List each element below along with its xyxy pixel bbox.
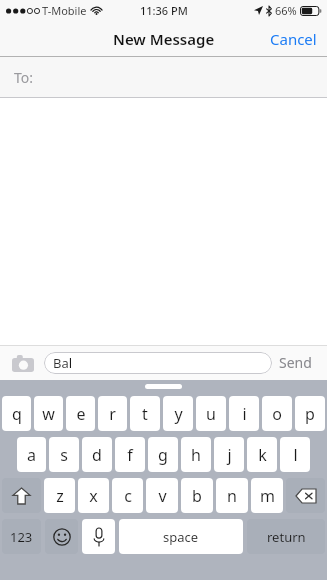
staticText: Send bbox=[279, 353, 312, 372]
button[interactable]: t bbox=[130, 396, 160, 431]
button[interactable]: i bbox=[229, 396, 259, 431]
button[interactable]: Cancel bbox=[260, 21, 327, 57]
staticText: z bbox=[56, 485, 64, 507]
button[interactable]: n bbox=[216, 478, 248, 513]
staticText: t bbox=[142, 403, 148, 425]
staticText: g bbox=[158, 444, 168, 466]
button[interactable]: Shift bbox=[2, 478, 41, 513]
staticText: w bbox=[42, 403, 55, 425]
button[interactable]: Dictation bbox=[82, 519, 115, 554]
staticText: y bbox=[174, 403, 183, 425]
button[interactable]: o bbox=[262, 396, 292, 431]
staticText: b bbox=[192, 485, 202, 507]
button[interactable]: x bbox=[78, 478, 109, 513]
staticText: Bal bbox=[53, 354, 73, 372]
button[interactable]: Camera bbox=[8, 348, 38, 378]
button[interactable]: j bbox=[214, 437, 244, 472]
staticText: l bbox=[293, 444, 298, 466]
button[interactable]: 123 bbox=[2, 519, 41, 554]
button[interactable]: u bbox=[196, 396, 226, 431]
button[interactable]: v bbox=[146, 478, 178, 513]
button[interactable]: r bbox=[98, 396, 127, 431]
staticText: 66% bbox=[275, 3, 297, 18]
staticText: p bbox=[305, 403, 315, 425]
button[interactable]: w bbox=[34, 396, 63, 431]
staticText: Cancel bbox=[270, 29, 317, 49]
staticText: n bbox=[227, 485, 237, 507]
button[interactable]: Send bbox=[272, 347, 319, 378]
staticText: o bbox=[272, 403, 282, 425]
staticText: s bbox=[60, 444, 68, 466]
button[interactable]: h bbox=[181, 437, 211, 472]
staticText: To: bbox=[14, 68, 34, 87]
button[interactable]: c bbox=[112, 478, 143, 513]
staticText: m bbox=[260, 485, 275, 507]
button[interactable]: k bbox=[247, 437, 277, 472]
button[interactable]: s bbox=[49, 437, 79, 472]
button[interactable]: z bbox=[44, 478, 75, 513]
button[interactable]: b bbox=[181, 478, 213, 513]
button[interactable]: Bal bbox=[44, 352, 272, 374]
staticText: return bbox=[267, 528, 306, 546]
staticText: 11:36 PM bbox=[140, 3, 188, 18]
button[interactable]: l bbox=[280, 437, 310, 472]
staticText: k bbox=[258, 444, 267, 466]
staticText: c bbox=[124, 485, 132, 507]
staticText: New Message bbox=[113, 29, 215, 49]
staticText: h bbox=[191, 444, 201, 466]
staticText: f bbox=[127, 444, 133, 466]
button[interactable]: q bbox=[2, 396, 31, 431]
button[interactable]: d bbox=[82, 437, 112, 472]
staticText: T-Mobile bbox=[42, 3, 87, 18]
button[interactable]: y bbox=[163, 396, 193, 431]
staticText: q bbox=[12, 403, 22, 425]
button[interactable]: p bbox=[295, 396, 325, 431]
staticText: 123 bbox=[10, 528, 33, 546]
button[interactable]: f bbox=[115, 437, 145, 472]
staticText: space bbox=[163, 528, 199, 546]
staticText: v bbox=[158, 485, 167, 507]
staticText: u bbox=[206, 403, 216, 425]
button[interactable]: return bbox=[247, 519, 325, 554]
staticText: e bbox=[76, 403, 86, 425]
staticText: i bbox=[242, 403, 247, 425]
button[interactable]: space bbox=[119, 519, 243, 554]
staticText: d bbox=[92, 444, 102, 466]
staticText: x bbox=[89, 485, 98, 507]
staticText: r bbox=[109, 403, 116, 425]
button[interactable]: Emoji bbox=[45, 519, 78, 554]
staticText: a bbox=[27, 444, 36, 466]
button[interactable]: e bbox=[66, 396, 95, 431]
button[interactable]: g bbox=[148, 437, 178, 472]
button[interactable]: m bbox=[251, 478, 283, 513]
button[interactable]: a bbox=[17, 437, 46, 472]
button[interactable]: Backspace bbox=[286, 478, 325, 513]
staticText: j bbox=[227, 444, 232, 466]
